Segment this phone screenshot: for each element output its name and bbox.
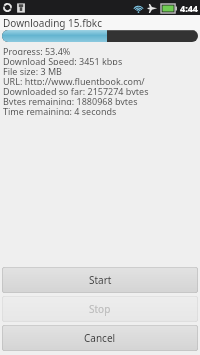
staticText: 4:44	[180, 2, 198, 14]
staticText: Bytes remaining: 1880968 bytes	[3, 95, 138, 105]
staticText: Progress: 53.4%	[3, 45, 71, 55]
staticText: Start	[89, 273, 112, 287]
staticText: Cancel	[84, 331, 116, 345]
staticText: Downloading 15.fbkc	[3, 16, 102, 30]
staticText: Time remaining: 4 seconds	[3, 105, 117, 115]
button[interactable]: Start	[2, 267, 198, 293]
staticText: URL: http://www.fluentbook.com/	[3, 75, 145, 85]
button[interactable]: Stop	[2, 296, 198, 322]
button[interactable]: Cancel	[2, 325, 198, 351]
staticText: Downloaded so far: 2157274 bytes	[3, 85, 149, 95]
staticText: Download Speed: 3451 kbps	[3, 55, 123, 65]
staticText: Stop	[89, 302, 111, 316]
staticText: File size: 3 MB	[3, 65, 62, 75]
